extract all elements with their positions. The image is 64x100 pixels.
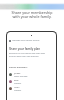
button[interactable]: Menu bbox=[7, 39, 56, 42]
button[interactable]: Jordan bbox=[7, 71, 56, 78]
staticText: Avery bbox=[14, 86, 20, 89]
staticText: Jordan bbox=[14, 72, 21, 75]
staticText: Member bbox=[14, 82, 22, 84]
staticText: Riley bbox=[14, 79, 19, 82]
staticText: Family members bbox=[9, 66, 28, 69]
staticText: Family manager bbox=[14, 75, 28, 77]
button[interactable]: Riley bbox=[7, 78, 56, 85]
staticText: Share your family plan bbox=[9, 47, 41, 51]
staticText: Member bbox=[14, 89, 22, 91]
staticText: Manage your family group bbox=[12, 39, 40, 42]
staticText: Share your membership with your whole fa… bbox=[3, 10, 61, 19]
staticText: Everyone in your family gets their own a… bbox=[9, 52, 46, 58]
button[interactable]: Avery bbox=[7, 85, 56, 92]
